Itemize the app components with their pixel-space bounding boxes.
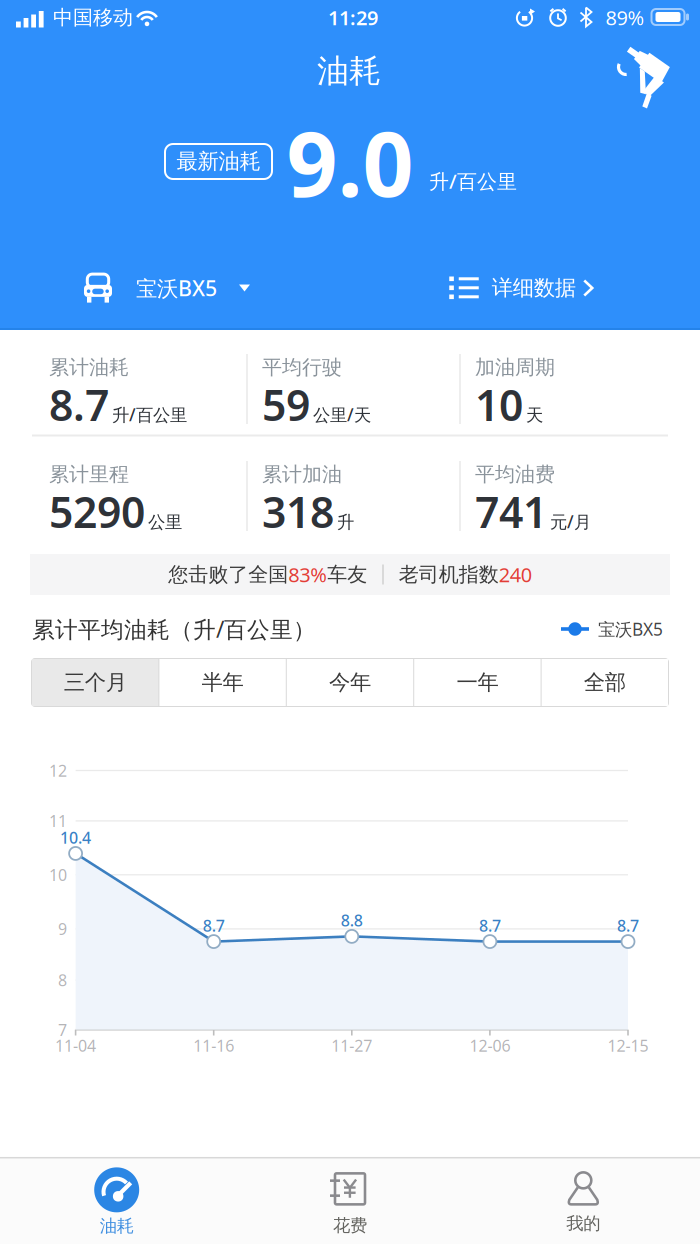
button[interactable]: 油耗 [94,1167,139,1237]
staticText: 三个月 [64,669,127,696]
staticText: 今年 [329,669,371,696]
staticText: 12-06 [469,1035,510,1056]
staticText: 一年 [456,669,498,696]
staticText: 240 [499,561,532,588]
staticText: 8.7 [617,915,639,936]
staticText: 公里/天 [313,403,371,426]
staticText: 59 [262,376,310,433]
staticText: 花费 [333,1215,367,1236]
button[interactable]: 详细数据 [449,275,593,301]
staticText: 油耗 [317,51,381,91]
staticText: 宝沃BX5 [136,274,217,302]
staticText: 老司机指数 [399,562,499,587]
staticText: 详细数据 [492,275,576,301]
staticText: 累计加油 [262,462,342,487]
staticText: 11 [49,810,67,831]
button[interactable]: 宝沃BX5 [84,272,250,303]
staticText: 8.7 [49,376,109,433]
staticText: 83% [288,561,327,588]
staticText: 宝沃BX5 [598,617,663,640]
staticText: 8.8 [341,910,363,931]
staticText: 升/百公里 [429,168,517,194]
staticText: 8.7 [479,915,501,936]
staticText: 累计平均油耗（升/百公里） [32,614,316,644]
staticText: 平均行驶 [262,355,342,380]
staticText: 11-16 [193,1035,234,1056]
staticText: 您击败了全国 [168,562,288,587]
staticText: 8 [58,969,67,991]
staticText: 11-04 [55,1035,96,1056]
staticText: 318 [262,483,334,540]
button[interactable]: 三个月 [32,659,158,706]
staticText: 中国移动 [53,5,133,30]
staticText: 天 [526,404,543,426]
staticText: 12-15 [607,1035,648,1056]
button[interactable]: 加油记录 [614,43,676,105]
button[interactable]: 今年 [287,659,413,706]
button[interactable]: 花费 [330,1170,370,1236]
staticText: 公里 [148,511,182,533]
staticText: 最新油耗 [176,148,260,175]
staticText: 加油周期 [475,355,555,380]
staticText: 5290 [49,483,145,540]
staticText: 半年 [202,669,244,696]
button[interactable]: 半年 [159,659,286,706]
staticText: 741 [475,483,547,540]
staticText: 9 [58,918,67,939]
staticText: 10.4 [60,827,91,848]
staticText: 8.7 [203,915,225,936]
staticText: 89% [605,4,644,31]
staticText: 累计油耗 [49,355,129,380]
staticText: 元/月 [550,510,591,533]
button[interactable]: 一年 [414,659,541,706]
staticText: 我的 [566,1213,600,1234]
staticText: 10 [475,376,523,433]
staticText: 10 [49,864,67,885]
staticText: 油耗 [100,1215,134,1237]
staticText: 9.0 [286,103,413,221]
staticText: 平均油费 [475,462,555,487]
staticText: 累计里程 [49,462,129,487]
staticText: 11:29 [328,4,378,31]
staticText: 升/百公里 [112,403,187,426]
button[interactable]: 我的 [566,1172,600,1234]
staticText: 12 [49,760,67,781]
button[interactable]: 全部 [542,659,668,706]
staticText: 升 [337,511,354,533]
staticText: 车友 [327,562,367,587]
staticText: 7 [58,1019,67,1040]
staticText: 11-27 [331,1035,372,1056]
staticText: 全部 [584,669,626,696]
